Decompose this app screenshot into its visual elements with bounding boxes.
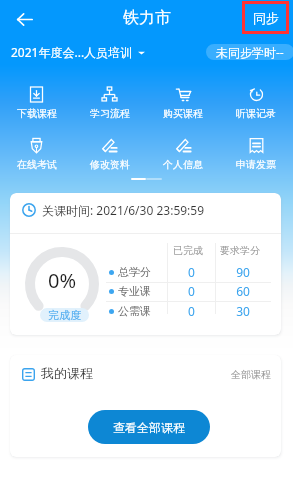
staticText: 全部课程 <box>231 368 271 381</box>
staticText: 完成度 <box>48 308 81 322</box>
staticText: 0 <box>168 283 215 299</box>
button[interactable] <box>149 79 217 117</box>
staticText: 修改资料 <box>89 158 131 171</box>
button[interactable]: 未同步学时-- <box>206 44 293 60</box>
staticText: 学习流程 <box>89 107 131 120</box>
staticText: 申请发票 <box>235 158 277 171</box>
button[interactable] <box>3 79 71 117</box>
button[interactable]: 查看全部课程 <box>88 410 210 444</box>
staticText: 关课时间: 2021/6/30 23:59:59 <box>42 202 205 218</box>
staticText: 我的课程 <box>41 365 93 381</box>
button[interactable] <box>149 130 217 168</box>
staticText: 下载课程 <box>16 107 58 120</box>
staticText: 要求学分 <box>215 244 265 257</box>
staticText: 未同步学时-- <box>216 44 284 60</box>
button[interactable] <box>3 130 71 168</box>
staticText: 30 <box>215 303 271 319</box>
staticText: 90 <box>215 264 271 280</box>
staticText: 总学分 <box>118 265 151 279</box>
button[interactable]: 全部课程 <box>228 366 274 383</box>
staticText: 购买课程 <box>162 107 204 120</box>
button[interactable] <box>76 79 144 117</box>
staticText: 在线考试 <box>16 158 58 171</box>
staticText: 0 <box>168 264 215 280</box>
button[interactable]: 同步 <box>242 1 289 34</box>
staticText: 已完成 <box>168 244 208 257</box>
button[interactable] <box>222 79 290 117</box>
staticText: 专业课 <box>118 284 151 298</box>
button[interactable] <box>222 130 290 168</box>
staticText: 铁力市 <box>123 8 171 28</box>
staticText: 0 <box>168 303 215 319</box>
staticText: 2021年度会...人员培训 <box>11 44 133 60</box>
staticText: 同步 <box>253 10 279 26</box>
staticText: 听课记录 <box>235 107 277 120</box>
staticText: 个人信息 <box>162 158 204 171</box>
button[interactable]: Back <box>10 5 38 33</box>
staticText: 公需课 <box>118 304 151 318</box>
button[interactable]: 2021年度会...人员培训 <box>11 44 145 60</box>
button[interactable] <box>76 130 144 168</box>
staticText: 0% <box>43 267 81 294</box>
staticText: 60 <box>215 283 271 299</box>
staticText: 查看全部课程 <box>113 420 185 435</box>
